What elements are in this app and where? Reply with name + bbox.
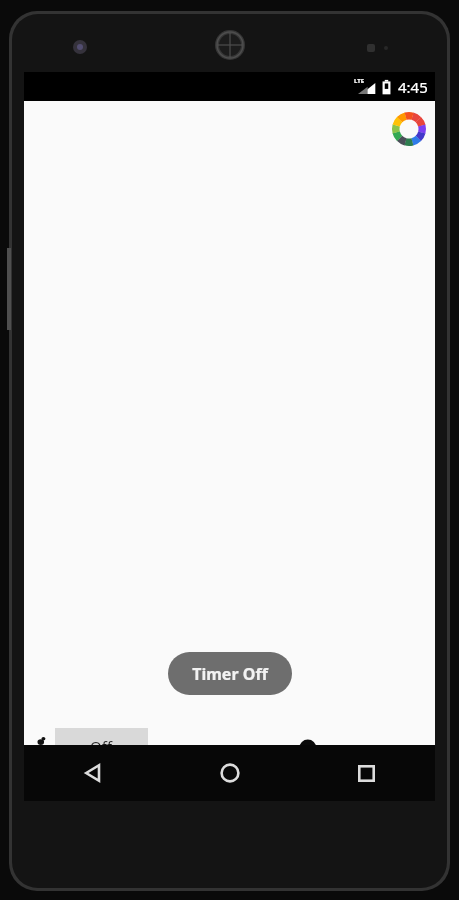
button[interactable]: Colour picker (390, 110, 428, 148)
button[interactable]: Timer Off (168, 652, 292, 695)
button[interactable]: Back (24, 745, 161, 801)
staticText: LTE (354, 77, 365, 85)
button[interactable]: Recent apps (298, 745, 435, 801)
staticText: 4:45 (398, 77, 428, 97)
button[interactable]: Off (55, 728, 148, 768)
button[interactable]: Smoke (27, 734, 55, 762)
button[interactable]: Home (161, 745, 298, 801)
staticText: Off (90, 736, 113, 756)
button[interactable]: Level slider (166, 728, 417, 768)
staticText: Timer Off (192, 663, 268, 685)
